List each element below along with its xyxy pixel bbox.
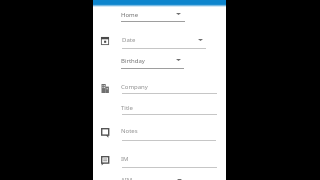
staticText: Date — [122, 36, 136, 44]
staticText: Notes — [121, 127, 138, 135]
staticText: Birthday — [121, 57, 145, 65]
button[interactable] — [93, 0, 226, 7]
staticText: Title — [121, 104, 133, 112]
button[interactable] — [121, 56, 185, 68]
staticText: Home — [121, 11, 139, 19]
staticText: Company — [121, 83, 148, 91]
button[interactable] — [121, 126, 216, 139]
button[interactable] — [121, 175, 185, 180]
staticText: AIM — [121, 176, 133, 180]
button[interactable] — [121, 82, 216, 94]
staticText: IM — [121, 155, 129, 163]
button[interactable] — [121, 9, 185, 21]
button[interactable] — [121, 103, 216, 115]
button[interactable] — [122, 34, 206, 48]
button[interactable] — [121, 153, 216, 166]
